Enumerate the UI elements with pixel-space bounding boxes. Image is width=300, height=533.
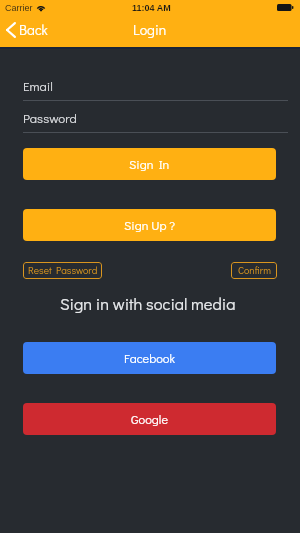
staticText: Carrier [5, 3, 33, 13]
button[interactable]: Sign In [23, 148, 276, 180]
staticText: 11:04 AM [132, 3, 171, 13]
button[interactable]: Email [23, 72, 288, 101]
staticText: Facebook [124, 350, 175, 366]
staticText: Email [23, 77, 53, 94]
staticText: Back [19, 20, 48, 38]
staticText: Sign in with social media [60, 293, 236, 315]
staticText: Reset Password [28, 264, 98, 277]
button[interactable]: Confirm [231, 262, 277, 279]
button[interactable]: Google [23, 403, 276, 435]
staticText: Sign In [129, 156, 170, 172]
button[interactable]: Back [2, 20, 58, 47]
staticText: Password [23, 109, 77, 126]
staticText: Login [133, 20, 167, 38]
other: Battery [277, 4, 294, 11]
button[interactable]: Facebook [23, 342, 276, 374]
button[interactable]: Reset Password [23, 262, 102, 279]
staticText: Google [131, 411, 168, 427]
button[interactable]: Password [23, 104, 288, 133]
button[interactable]: Sign Up ? [23, 209, 276, 241]
staticText: Confirm [238, 264, 271, 277]
other: Wi-Fi [36, 4, 46, 11]
staticText: Sign Up ? [124, 217, 175, 233]
